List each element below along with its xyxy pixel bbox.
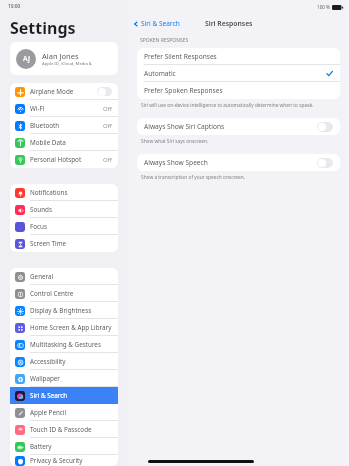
staticText: Always Show Speech <box>144 158 208 167</box>
staticText: Accessibility <box>30 357 66 366</box>
staticText: Wi-Fi <box>30 104 45 113</box>
button[interactable]: Always Show Siri Captions <box>137 118 340 135</box>
button[interactable]: Sounds <box>10 201 118 218</box>
button[interactable]: Screen Time <box>10 235 118 252</box>
staticText: Automatic <box>144 69 176 78</box>
button[interactable]: Privacy & Security <box>10 455 118 466</box>
staticText: Siri & Search <box>30 391 68 400</box>
button[interactable]: Multitasking & Gestures <box>10 336 118 353</box>
staticText: Screen Time <box>30 239 67 248</box>
staticText: Multitasking & Gestures <box>30 340 101 349</box>
button[interactable]: Airplane Mode <box>10 83 118 100</box>
button[interactable]: Display & Brightness <box>10 302 118 319</box>
staticText: SPOKEN RESPONSES <box>140 37 189 44</box>
button[interactable]: Always Show Speech <box>137 154 340 171</box>
button[interactable]: Focus <box>10 218 118 235</box>
staticText: Show a transcription of your speech onsc… <box>141 174 246 181</box>
staticText: Always Show Siri Captions <box>144 122 225 131</box>
staticText: Bluetooth <box>30 121 60 130</box>
button[interactable]: Wallpaper <box>10 370 118 387</box>
button[interactable]: AJ <box>10 42 118 75</box>
button[interactable]: Prefer Spoken Responses <box>137 82 340 99</box>
staticText: Sounds <box>30 205 52 214</box>
staticText: Off <box>103 122 112 130</box>
button[interactable]: General <box>10 268 118 285</box>
button[interactable]: Home Screen & App Library <box>10 319 118 336</box>
staticText: Touch ID & Passcode <box>30 425 92 434</box>
staticText: Airplane Mode <box>30 87 74 96</box>
button[interactable]: Siri & Search <box>10 387 118 404</box>
staticText: Apple ID, iCloud, Media & Purchases <box>42 61 112 67</box>
staticText: Home Screen & App Library <box>30 323 112 332</box>
staticText: Siri Responses <box>205 19 253 28</box>
staticText: Prefer Spoken Responses <box>144 86 223 95</box>
button[interactable]: Automatic <box>137 65 340 82</box>
button[interactable]: Control Centre <box>10 285 118 302</box>
staticText: AJ <box>23 54 30 64</box>
button[interactable]: Mobile Data <box>10 134 118 151</box>
button[interactable]: Wi-Fi <box>10 100 118 117</box>
staticText: Mobile Data <box>30 138 66 147</box>
staticText: Prefer Silent Responses <box>144 52 217 61</box>
button[interactable]: Bluetooth <box>10 117 118 134</box>
staticText: 100 % <box>317 4 330 10</box>
button[interactable]: Prefer Silent Responses <box>137 48 340 65</box>
button[interactable]: Touch ID & Passcode <box>10 421 118 438</box>
staticText: Off <box>103 105 112 113</box>
staticText: Focus <box>30 222 48 231</box>
staticText: Off <box>103 156 112 164</box>
staticText: Display & Brightness <box>30 306 92 315</box>
staticText: Siri will use on-device intelligence to … <box>141 102 314 109</box>
staticText: Settings <box>10 17 76 39</box>
button[interactable]: Accessibility <box>10 353 118 370</box>
staticText: Wallpaper <box>30 374 60 383</box>
staticText: General <box>30 272 54 281</box>
button[interactable]: Siri & Search <box>133 19 180 28</box>
staticText: Privacy & Security <box>30 456 83 465</box>
staticText: Alan Jones <box>42 51 79 61</box>
staticText: Siri & Search <box>141 19 180 28</box>
button[interactable]: Apple Pencil <box>10 404 118 421</box>
staticText: Show what Siri says onscreen. <box>141 138 209 145</box>
button[interactable]: Notifications <box>10 184 118 201</box>
staticText: Notifications <box>30 188 68 197</box>
staticText: 10:00 <box>8 3 21 10</box>
button[interactable]: Personal Hotspot <box>10 151 118 168</box>
button[interactable]: Battery <box>10 438 118 455</box>
staticText: Personal Hotspot <box>30 155 82 164</box>
staticText: Apple Pencil <box>30 408 67 417</box>
staticText: Battery <box>30 442 52 451</box>
staticText: Control Centre <box>30 289 74 298</box>
